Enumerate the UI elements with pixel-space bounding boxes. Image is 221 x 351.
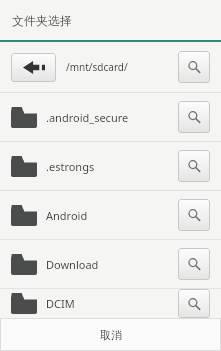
staticText: DCIM — [46, 296, 178, 311]
button[interactable]: Search — [178, 248, 210, 280]
button[interactable]: Back — [11, 53, 56, 82]
button[interactable]: Search — [178, 199, 210, 231]
button[interactable]: Download — [0, 240, 221, 288]
staticText: Android — [46, 208, 178, 223]
staticText: Download — [46, 257, 178, 272]
staticText: /mnt/sdcard/ — [66, 60, 178, 74]
staticText: 文件夹选择 — [12, 13, 72, 28]
button[interactable]: Back — [0, 42, 221, 92]
button[interactable]: Search — [178, 101, 210, 133]
button[interactable]: 取消 — [0, 318, 221, 351]
button[interactable]: Android — [0, 191, 221, 239]
button[interactable]: Search — [178, 51, 210, 83]
button[interactable]: .estrongs — [0, 142, 221, 190]
button[interactable]: Search — [178, 289, 210, 318]
staticText: .estrongs — [46, 159, 178, 174]
button[interactable]: Search — [178, 150, 210, 182]
staticText: .android_secure — [46, 110, 178, 125]
button[interactable]: .android_secure — [0, 93, 221, 141]
button[interactable]: DCIM — [0, 289, 221, 318]
staticText: 取消 — [100, 328, 122, 342]
